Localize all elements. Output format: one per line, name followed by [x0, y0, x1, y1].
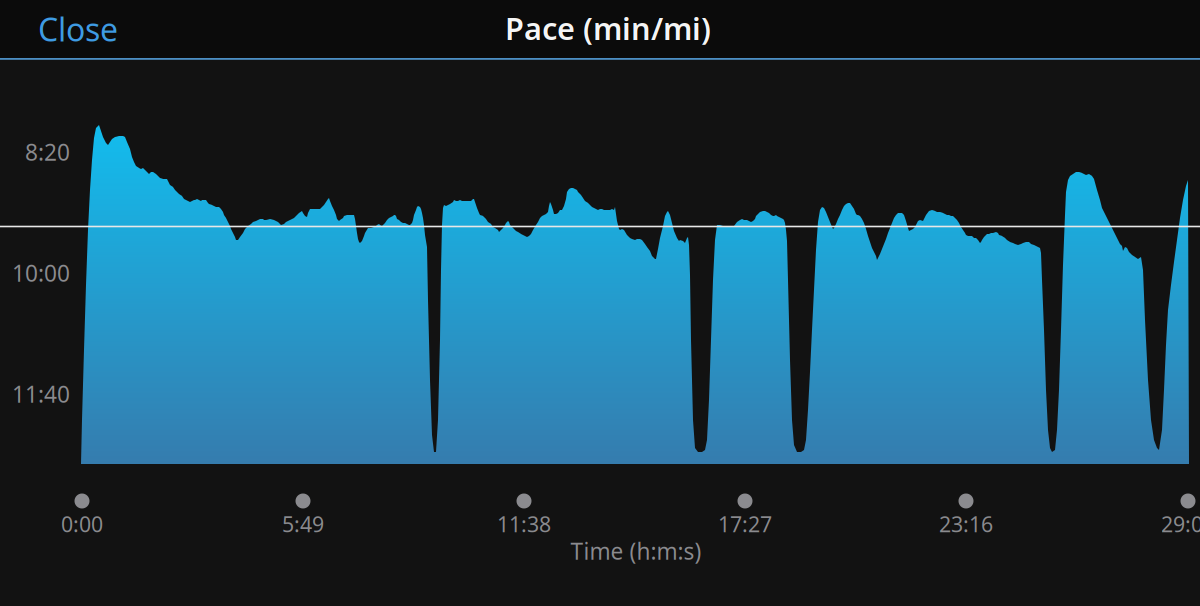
staticText: Close — [38, 8, 118, 50]
staticText: 23:16 — [939, 510, 993, 538]
staticText: 11:40 — [12, 379, 70, 409]
staticText: 11:38 — [497, 510, 551, 538]
staticText: 5:49 — [282, 510, 324, 538]
staticText: 8:20 — [25, 137, 70, 167]
staticText: Time (h:m:s) — [570, 536, 701, 566]
staticText: Pace (min/mi) — [505, 8, 711, 48]
button[interactable]: Close — [24, 0, 132, 60]
staticText: 10:00 — [12, 258, 70, 288]
staticText: 17:27 — [718, 510, 772, 538]
staticText: 0:00 — [61, 510, 103, 538]
staticText: 29:05 — [1161, 510, 1200, 538]
